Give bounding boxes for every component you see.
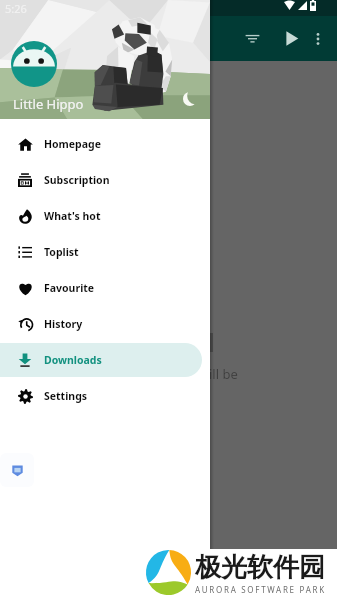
staticText: Downloads xyxy=(44,353,102,367)
staticText: AURORA SOFTWARE PARK xyxy=(195,584,326,595)
staticText: Settings xyxy=(44,389,88,403)
button[interactable]: More options xyxy=(301,16,334,61)
button[interactable]: App shortcut xyxy=(0,453,34,487)
button[interactable]: Filter xyxy=(232,16,273,61)
button[interactable]: Subscription xyxy=(0,163,202,197)
staticText: 5:26 xyxy=(5,1,27,16)
button[interactable]: Downloads xyxy=(0,343,202,377)
button[interactable]: What's hot xyxy=(0,199,202,233)
button[interactable]: Play xyxy=(271,16,312,61)
staticText: Subscription xyxy=(44,173,110,187)
button[interactable]: Homepage xyxy=(0,127,202,161)
button[interactable]: Favourite xyxy=(0,271,202,305)
staticText: Toplist xyxy=(44,245,79,259)
staticText: History xyxy=(44,317,83,331)
button[interactable]: Settings xyxy=(0,379,202,413)
staticText: 极光软件园 xyxy=(195,551,325,584)
staticText: Homepage xyxy=(44,137,101,151)
button[interactable]: Toplist xyxy=(0,235,202,269)
staticText: What's hot xyxy=(44,209,101,223)
staticText: ill be xyxy=(209,365,238,383)
staticText: Little Hippo xyxy=(13,95,84,113)
staticText: Favourite xyxy=(44,281,95,295)
button[interactable]: History xyxy=(0,307,202,341)
button[interactable]: Profile xyxy=(11,41,57,87)
